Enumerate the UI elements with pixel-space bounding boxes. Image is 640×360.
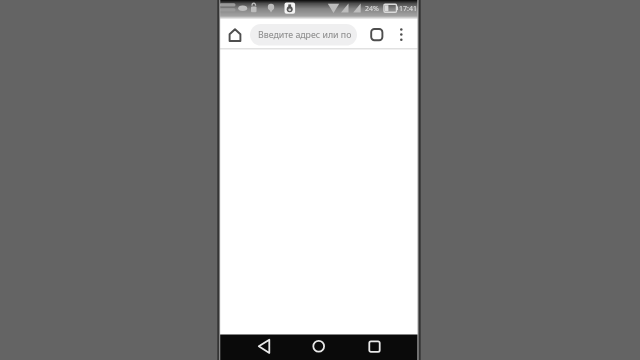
staticText: 24%: [365, 4, 379, 14]
staticText: Введите адрес или по: [258, 29, 352, 41]
staticText: 17:41: [399, 4, 417, 14]
